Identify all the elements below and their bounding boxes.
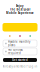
staticText: Mobile Experience [6, 11, 34, 15]
staticText: The Best Local [9, 8, 30, 11]
staticText: Already a member? Log in [2, 65, 37, 68]
staticText: Flexible monthly plans [8, 40, 30, 47]
button[interactable]: Flexible monthly plans [3, 40, 37, 47]
button[interactable]: Get started [3, 58, 37, 62]
staticText: Enjoy [16, 4, 24, 8]
staticText: No contract required [8, 48, 23, 55]
button[interactable]: No contract required [3, 48, 37, 55]
button[interactable]: Already a member? Log in [2, 65, 37, 68]
staticText: Get started [12, 58, 28, 62]
